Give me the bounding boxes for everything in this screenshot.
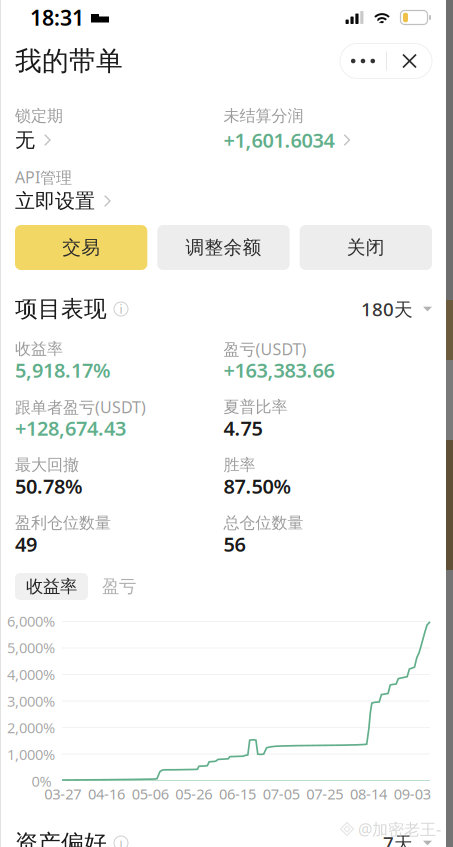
staticText: 5,918.17% xyxy=(15,357,111,383)
staticText: 49 xyxy=(15,531,37,557)
staticText: 交易 xyxy=(62,236,100,259)
staticText: 收益率 xyxy=(26,576,77,597)
staticText: +1,601.6034 xyxy=(223,127,334,153)
button[interactable]: 锁定期 xyxy=(15,104,223,152)
staticText: 0% xyxy=(31,771,51,791)
staticText: 18:31 xyxy=(30,3,84,32)
staticText: 06-15 xyxy=(219,784,256,803)
staticText: 锁定期 xyxy=(15,106,63,126)
staticText: 调整余额 xyxy=(185,236,261,259)
button[interactable]: 7天 xyxy=(383,830,432,847)
staticText: 项目表现 xyxy=(15,295,107,323)
staticText: 无 xyxy=(15,128,35,152)
staticText: 3,000% xyxy=(7,691,55,711)
staticText: +163,383.66 xyxy=(223,357,334,383)
staticText: i xyxy=(119,301,122,317)
staticText: 1,000% xyxy=(7,745,55,764)
staticText: 未结算分润 xyxy=(223,106,303,126)
staticText: i xyxy=(119,835,122,847)
staticText: 56 xyxy=(223,531,245,557)
staticText: 180天 xyxy=(361,297,413,321)
staticText: 7天 xyxy=(383,831,413,847)
staticText: 07-25 xyxy=(306,784,343,803)
staticText: 总仓位数量 xyxy=(223,513,303,533)
button[interactable]: 180天 xyxy=(361,296,432,322)
staticText: 08-14 xyxy=(350,784,387,803)
button[interactable]: 交易 xyxy=(15,225,147,270)
staticText: 07-05 xyxy=(263,784,300,803)
staticText: 03-27 xyxy=(44,784,81,803)
staticText: 2,000% xyxy=(7,718,55,737)
button[interactable]: 更多 关闭 xyxy=(340,43,432,78)
staticText: 4,000% xyxy=(7,665,55,684)
staticText: 05-26 xyxy=(175,784,212,803)
staticText: 立即设置 xyxy=(15,189,95,213)
staticText: 最大回撤 xyxy=(15,455,79,475)
staticText: 09-03 xyxy=(394,784,431,803)
button[interactable]: 关闭 xyxy=(300,225,432,270)
staticText: 关闭 xyxy=(347,236,385,259)
staticText: 盈亏 xyxy=(102,576,136,597)
button[interactable]: 调整余额 xyxy=(157,225,290,270)
staticText: 资产偏好 xyxy=(15,829,107,847)
staticText: 04-16 xyxy=(88,784,125,803)
staticText: 我的带单 xyxy=(15,45,123,77)
staticText: @加密老王- xyxy=(358,818,441,840)
staticText: +128,674.43 xyxy=(15,415,126,441)
button[interactable]: 未结算分润 xyxy=(223,104,432,152)
staticText: 盈利仓位数量 xyxy=(15,513,111,533)
button[interactable]: 盈亏 xyxy=(92,573,146,600)
button[interactable]: 收益率 xyxy=(15,573,88,600)
staticText: 收益率 xyxy=(15,339,63,359)
staticText: 6,000% xyxy=(7,611,55,631)
staticText: 盈亏(USDT) xyxy=(223,338,306,360)
staticText: 胜率 xyxy=(223,455,255,475)
staticText: API管理 xyxy=(15,166,72,188)
staticText: 4.75 xyxy=(223,415,262,441)
button[interactable]: API管理 xyxy=(15,165,223,213)
staticText: 87.50% xyxy=(223,473,291,499)
staticText: 跟单者盈亏(USDT) xyxy=(15,396,146,418)
staticText: 夏普比率 xyxy=(223,397,287,417)
staticText: 5,000% xyxy=(7,638,55,657)
staticText: 50.78% xyxy=(15,473,83,499)
staticText: 05-06 xyxy=(132,784,169,803)
